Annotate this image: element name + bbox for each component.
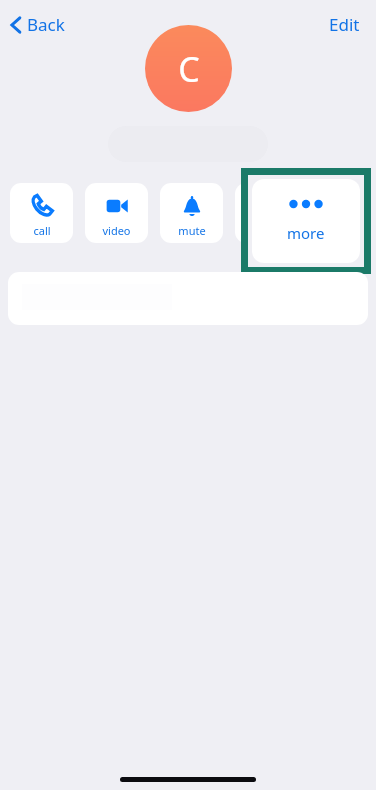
button[interactable]: Edit xyxy=(323,9,366,40)
staticText: more xyxy=(287,223,325,243)
staticText: video xyxy=(102,223,131,238)
staticText: C xyxy=(178,46,200,92)
button[interactable]: more xyxy=(252,179,360,263)
button[interactable]: mute xyxy=(160,183,223,243)
button[interactable]: More actions xyxy=(235,183,298,243)
button[interactable]: video xyxy=(85,183,148,243)
staticText: call xyxy=(33,223,51,238)
staticText: Back xyxy=(27,13,65,36)
staticText: Edit xyxy=(329,13,360,36)
button[interactable]: Back xyxy=(6,9,69,40)
button[interactable]: call xyxy=(10,183,73,243)
staticText: mute xyxy=(178,223,206,238)
button[interactable] xyxy=(8,272,368,325)
button[interactable]: C xyxy=(145,25,232,112)
